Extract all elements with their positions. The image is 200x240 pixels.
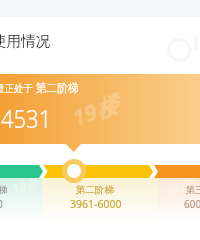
staticText: 4531: [1, 101, 52, 135]
staticText: 3961-6000: [70, 197, 122, 211]
staticText: 第一阶梯: [0, 184, 7, 195]
staticText: 6000以上: [184, 197, 200, 211]
staticText: 第二阶梯: [76, 184, 114, 196]
staticText: 第三阶梯: [186, 184, 200, 195]
staticText: 19楼: [9, 171, 41, 197]
staticText: 19楼: [68, 88, 122, 132]
staticText: 用电量正处于: [0, 81, 35, 95]
staticText: 第二阶梯: [35, 80, 79, 95]
staticText: 0-3960: [0, 197, 3, 211]
staticText: 使用情况: [0, 32, 50, 50]
staticText: 19楼: [163, 173, 195, 199]
